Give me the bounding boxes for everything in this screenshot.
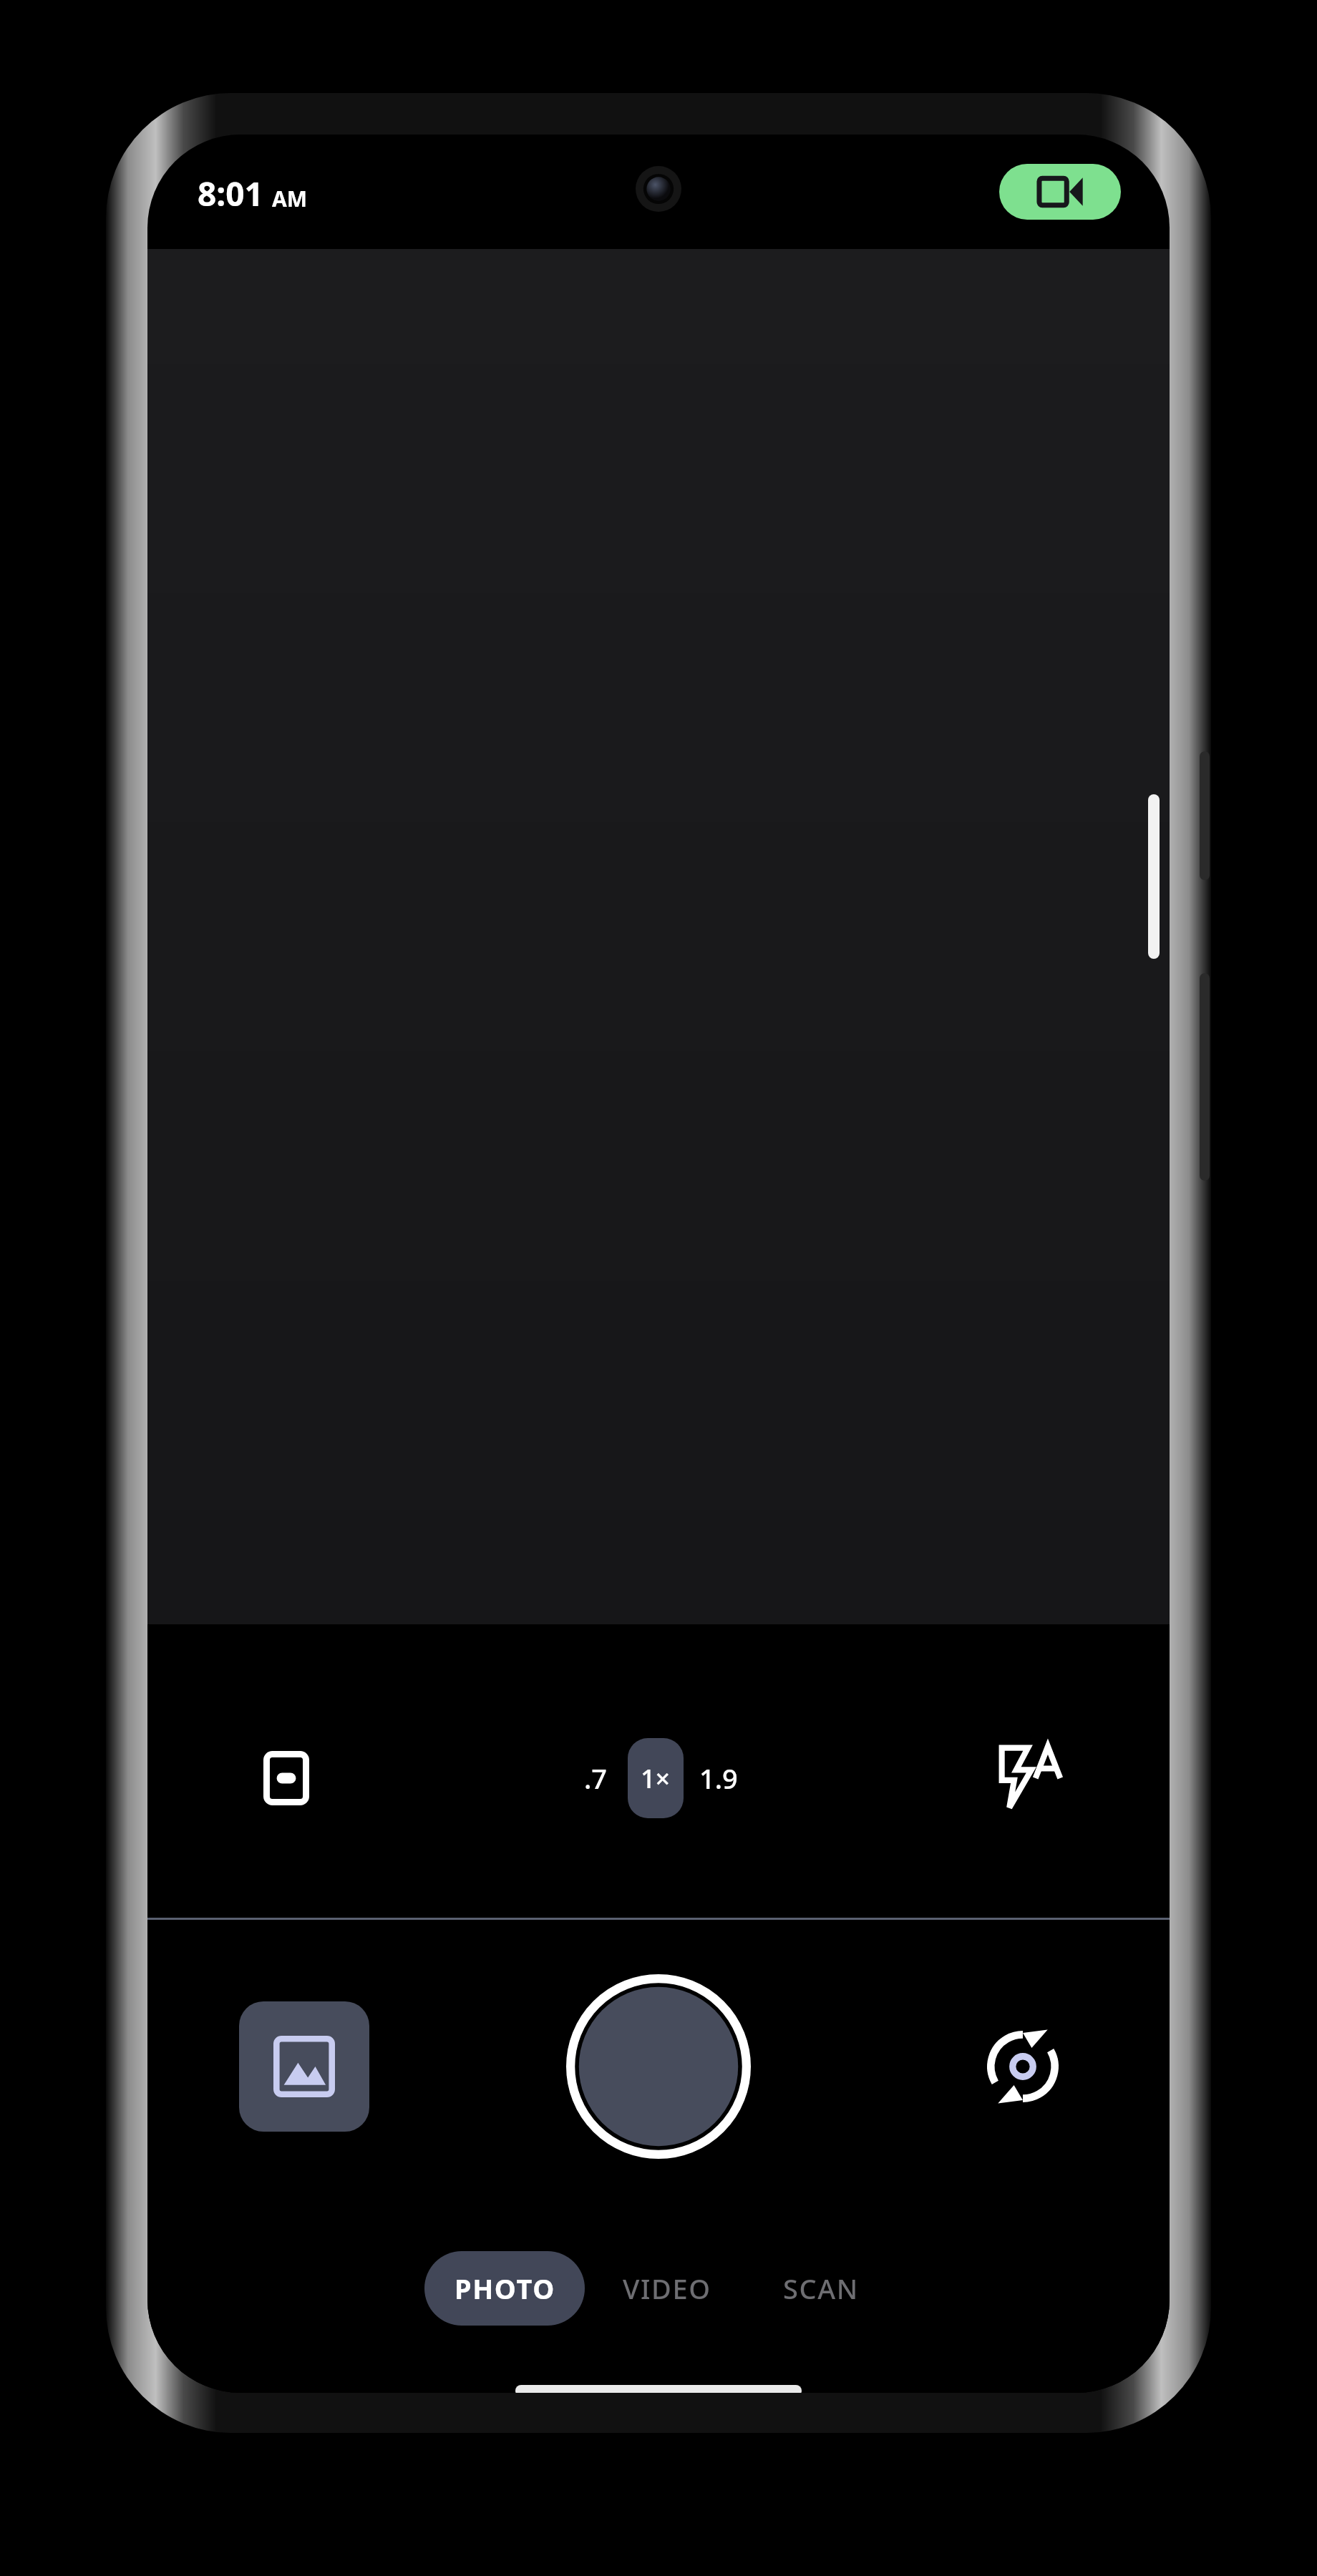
button[interactable]: Camera in use xyxy=(999,164,1121,220)
staticText: VIDEO xyxy=(623,2270,711,2307)
staticText: AM xyxy=(272,184,308,213)
staticText: .7 xyxy=(584,1760,608,1797)
button[interactable]: Switch camera xyxy=(969,2013,1077,2120)
button[interactable]: SCAN xyxy=(749,2251,893,2326)
button[interactable]: 1× xyxy=(628,1738,684,1818)
staticText: 8:01 xyxy=(198,171,263,216)
button[interactable]: PHOTO xyxy=(424,2251,585,2326)
button[interactable]: VIDEO xyxy=(585,2251,749,2326)
button[interactable]: Take photo xyxy=(566,1974,751,2159)
button[interactable]: .7 xyxy=(563,1746,628,1810)
button[interactable]: 1.9 xyxy=(684,1746,754,1810)
staticText: 1× xyxy=(641,1761,671,1796)
staticText: PHOTO xyxy=(455,2270,555,2307)
staticText: SCAN xyxy=(783,2270,859,2307)
button[interactable]: Exposure settings xyxy=(249,1741,324,1815)
button[interactable]: Flash auto xyxy=(991,1737,1069,1816)
staticText: 1.9 xyxy=(699,1760,738,1797)
button[interactable]: Gallery xyxy=(239,2001,369,2132)
